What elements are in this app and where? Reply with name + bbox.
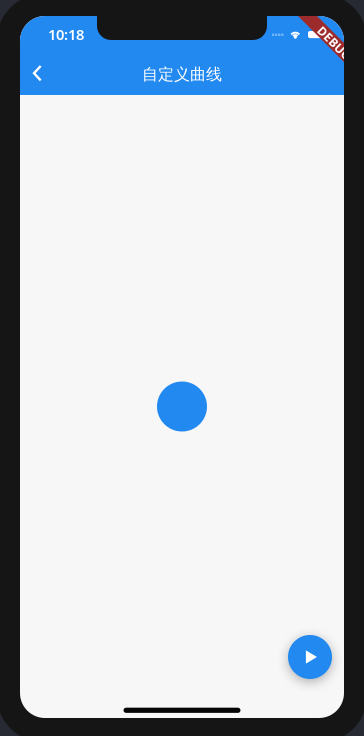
staticText: 自定义曲线 [142,65,222,84]
staticText: 10:18 [48,24,84,44]
button[interactable]: Back [20,54,58,95]
button[interactable]: Play [288,635,332,679]
staticText: DEBUG [313,35,355,51]
